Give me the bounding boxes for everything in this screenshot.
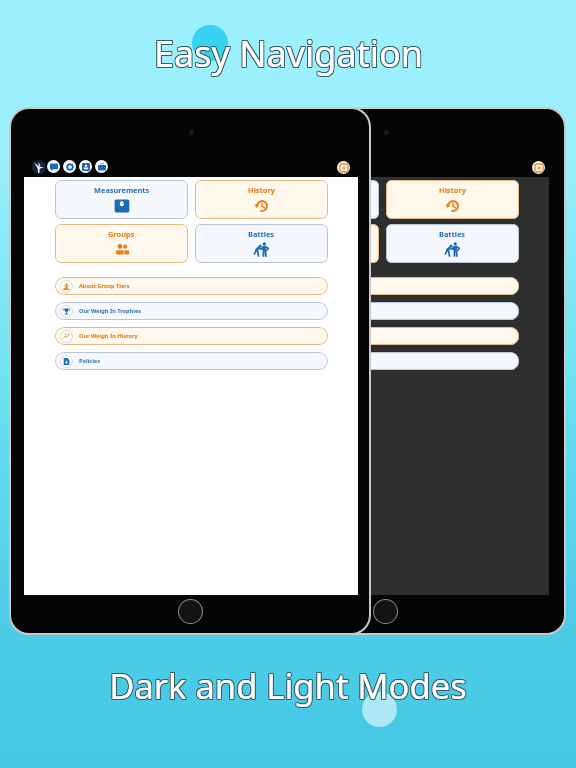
button[interactable]: Groups: [246, 224, 379, 263]
button[interactable]: Add: [532, 161, 545, 174]
staticText: Our Weigh In Trophies: [270, 307, 333, 315]
staticText: History: [439, 185, 466, 195]
staticText: Our Weigh In History: [79, 332, 138, 340]
staticText: Battles: [439, 229, 466, 239]
button[interactable]: Add: [337, 161, 350, 174]
button[interactable]: Home: [32, 160, 46, 174]
staticText: Measurements: [94, 185, 150, 195]
button[interactable]: Battles: [386, 224, 519, 263]
button[interactable]: Our Weigh In Trophies: [55, 302, 328, 320]
button[interactable]: Battles: [195, 224, 328, 263]
staticText: Easy Navigation: [153, 30, 422, 79]
staticText: Dark and Light Modes: [108, 661, 466, 708]
staticText: Policies: [79, 357, 101, 365]
button[interactable]: Settings: [63, 160, 76, 173]
button[interactable]: Policies: [246, 352, 519, 370]
button[interactable]: Policies: [55, 352, 328, 370]
staticText: Dark and Light Modes: [109, 662, 467, 709]
staticText: History: [248, 185, 275, 195]
staticText: Our Weigh In History: [270, 332, 329, 340]
staticText: Easy Navigation: [153, 28, 422, 77]
button[interactable]: Measurements: [55, 180, 188, 219]
button[interactable]: Groups: [55, 224, 188, 263]
staticText: About Group Tiers: [79, 282, 130, 290]
button[interactable]: About Group Tiers: [55, 277, 328, 295]
staticText: Our Weigh In Trophies: [79, 307, 142, 315]
staticText: Dark and Light Modes: [110, 661, 468, 708]
staticText: Easy Navigation: [155, 30, 424, 79]
button[interactable]: Our Weigh In Trophies: [246, 302, 519, 320]
staticText: Dark and Light Modes: [110, 663, 468, 710]
staticText: Dark and Light Modes: [109, 661, 467, 708]
button[interactable]: Our Weigh In History: [55, 327, 328, 345]
staticText: Easy Navigation: [153, 29, 422, 78]
button[interactable]: Measurements: [246, 180, 379, 219]
button[interactable]: Messages: [47, 160, 60, 173]
button[interactable]: Profile: [79, 160, 92, 173]
button[interactable]: About Group Tiers: [246, 277, 519, 295]
staticText: Easy Navigation: [155, 29, 424, 78]
staticText: Easy Navigation: [154, 30, 423, 79]
staticText: Measurements: [285, 185, 341, 195]
staticText: Dark and Light Modes: [109, 663, 467, 710]
button[interactable]: Tools: [95, 160, 108, 173]
staticText: Dark and Light Modes: [108, 662, 466, 709]
button[interactable]: History: [386, 180, 519, 219]
staticText: Battles: [248, 229, 275, 239]
staticText: Easy Navigation: [154, 28, 423, 77]
staticText: Dark and Light Modes: [110, 662, 468, 709]
staticText: Easy Navigation: [155, 28, 424, 77]
staticText: Dark and Light Modes: [108, 663, 466, 710]
button[interactable]: History: [195, 180, 328, 219]
button[interactable]: Our Weigh In History: [246, 327, 519, 345]
staticText: Easy Navigation: [154, 29, 423, 78]
staticText: Groups: [108, 229, 135, 239]
